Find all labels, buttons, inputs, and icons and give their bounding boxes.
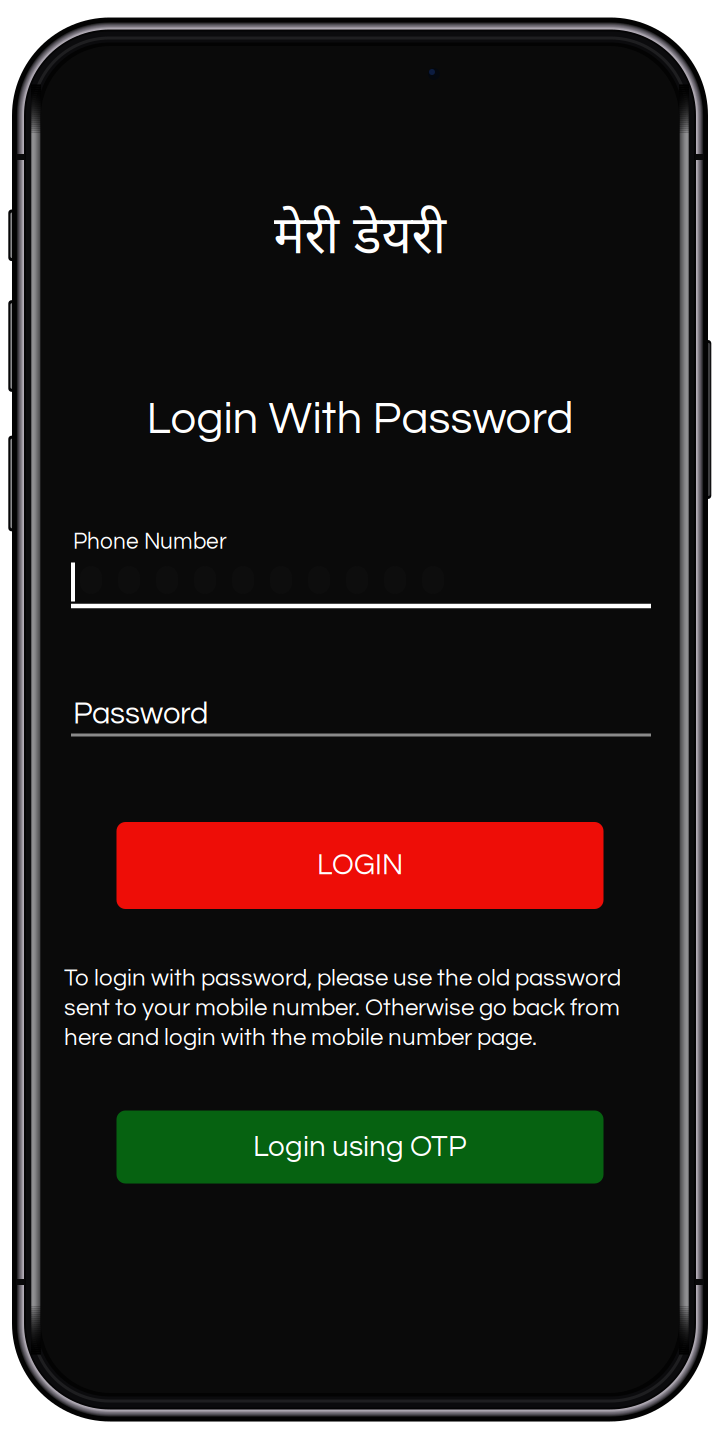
staticText: Phone Number [73, 530, 227, 554]
staticText: Password [73, 698, 208, 730]
button[interactable]: Login using OTP [116, 1110, 603, 1183]
staticText: LOGIN [317, 851, 403, 880]
button[interactable]: LOGIN [116, 822, 603, 909]
staticText: मेरी डेयरी [273, 197, 446, 269]
staticText: Login using OTP [253, 1132, 467, 1162]
staticText: To login with password, please use the o… [64, 966, 621, 1050]
staticText: Login With Password [146, 396, 573, 442]
